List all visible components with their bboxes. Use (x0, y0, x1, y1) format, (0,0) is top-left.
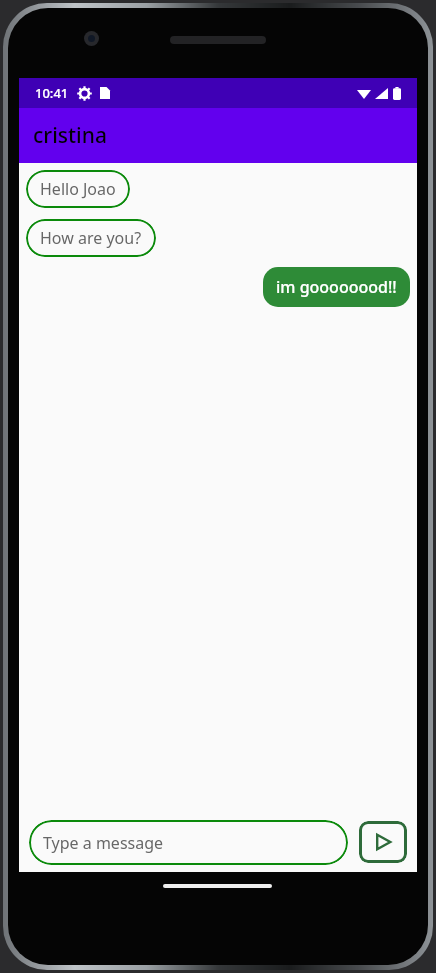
button[interactable]: How are you? (26, 219, 156, 257)
button[interactable]: Type a message (29, 820, 348, 865)
button[interactable]: im goooooood!! (263, 267, 410, 307)
staticText: Hello Joao (40, 178, 116, 200)
staticText: Type a message (43, 832, 164, 854)
button[interactable]: Send (359, 821, 407, 863)
staticText: 10:41 (35, 84, 69, 102)
staticText: im goooooood!! (276, 276, 397, 298)
staticText: cristina (33, 121, 107, 150)
staticText: How are you? (40, 227, 142, 249)
button[interactable]: Hello Joao (26, 170, 130, 208)
